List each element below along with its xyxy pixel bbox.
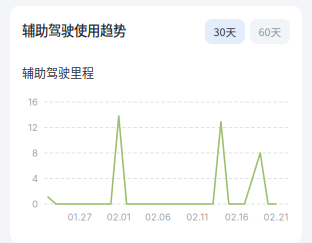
button[interactable]: 60天 bbox=[250, 19, 290, 44]
staticText: 辅助驾驶里程 bbox=[22, 64, 94, 81]
staticText: 4 bbox=[32, 173, 38, 184]
staticText: 02.06 bbox=[145, 211, 171, 223]
staticText: 0 bbox=[32, 198, 38, 210]
button[interactable]: 30天 bbox=[205, 19, 245, 44]
staticText: 12 bbox=[28, 122, 38, 133]
staticText: 30天 bbox=[213, 24, 236, 39]
staticText: 02.01 bbox=[107, 211, 131, 223]
staticText: 8 bbox=[32, 147, 38, 159]
staticText: 02.16 bbox=[225, 211, 249, 223]
staticText: 60天 bbox=[258, 24, 281, 39]
staticText: 01.27 bbox=[67, 211, 91, 223]
staticText: 16 bbox=[28, 96, 38, 108]
staticText: 辅助驾驶使用趋势 bbox=[22, 20, 126, 39]
staticText: 02.11 bbox=[186, 211, 208, 223]
staticText: 02.21 bbox=[263, 211, 288, 223]
